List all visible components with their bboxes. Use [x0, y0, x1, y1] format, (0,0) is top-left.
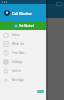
staticText: Home — [12, 33, 20, 37]
staticText: White List — [12, 42, 24, 46]
staticText: More App — [12, 78, 24, 82]
other: App icon — [4, 10, 10, 16]
button[interactable]: Time Slots — [0, 48, 46, 57]
staticText: Call Blocker — [12, 11, 33, 16]
staticText: Like Us — [12, 69, 21, 73]
staticText: Not Blocked — [19, 24, 34, 28]
button[interactable]: Like Us — [0, 66, 46, 75]
button[interactable]: Settings — [0, 57, 46, 66]
staticText: Time Slots — [12, 51, 25, 55]
button[interactable]: More App — [0, 75, 46, 84]
button[interactable]: Version — [37, 90, 44, 93]
staticText: Settings — [12, 60, 22, 64]
button[interactable]: White List — [0, 39, 46, 48]
button[interactable]: Home — [0, 30, 46, 39]
